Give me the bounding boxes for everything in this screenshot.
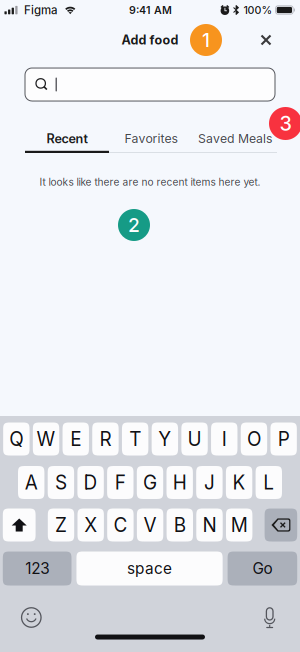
staticText: K [233, 471, 246, 494]
staticText: Add food [121, 32, 178, 48]
staticText: Recent [46, 131, 87, 146]
staticText: It looks like there are no recent items … [39, 176, 260, 188]
button[interactable]: H [166, 466, 193, 499]
staticText: Favorites [124, 131, 177, 146]
button[interactable]: E [62, 422, 89, 455]
staticText: Figma [24, 3, 58, 17]
staticText: Y [158, 427, 171, 450]
button[interactable]: Saved Meals [193, 129, 277, 153]
button[interactable]: N [196, 508, 223, 541]
button[interactable]: Z [48, 508, 74, 541]
staticText: W [36, 427, 55, 450]
button[interactable]: T [122, 422, 148, 455]
button[interactable]: S [48, 466, 74, 499]
staticText: J [204, 471, 215, 494]
staticText: I [222, 427, 227, 450]
staticText: E [70, 427, 81, 450]
button[interactable]: L [256, 466, 282, 499]
staticText: S [55, 471, 67, 494]
staticText: R [99, 427, 111, 450]
staticText: 1 [202, 28, 210, 52]
button[interactable]: A [18, 466, 44, 499]
staticText: C [113, 513, 127, 536]
button[interactable]: K [226, 466, 252, 499]
staticText: Z [55, 513, 67, 536]
staticText: T [129, 427, 141, 450]
staticText: F [115, 471, 126, 494]
staticText: 100% [244, 3, 273, 16]
button[interactable]: D [77, 466, 104, 499]
staticText: U [187, 427, 201, 450]
button[interactable] [25, 68, 275, 101]
staticText: N [202, 513, 216, 536]
staticText: G [143, 471, 157, 494]
staticText: Saved Meals [198, 131, 272, 146]
button[interactable]: C [107, 508, 134, 541]
staticText: D [84, 471, 98, 494]
button[interactable]: W [33, 422, 59, 455]
staticText: V [144, 513, 157, 536]
button[interactable]: X [77, 508, 104, 541]
button[interactable]: I [211, 422, 237, 455]
staticText: B [174, 513, 186, 536]
button[interactable]: Dictate [254, 602, 286, 632]
staticText: A [25, 471, 38, 494]
button[interactable]: Shift [3, 508, 36, 541]
button[interactable]: G [137, 466, 163, 499]
staticText: Q [9, 427, 23, 450]
button[interactable]: Close [251, 25, 281, 55]
button[interactable]: O [241, 422, 267, 455]
staticText: L [263, 471, 274, 494]
staticText: 3 [279, 111, 291, 135]
staticText: 9:41 AM [129, 3, 172, 16]
staticText: space [127, 559, 172, 578]
staticText: P [278, 427, 290, 450]
button[interactable]: Favorites [109, 129, 193, 153]
button[interactable]: Delete [265, 508, 297, 541]
button[interactable]: F [107, 466, 133, 499]
button[interactable]: U [181, 422, 208, 455]
staticText: M [231, 513, 248, 536]
button[interactable]: M [226, 508, 252, 541]
button[interactable]: R [92, 422, 119, 455]
staticText: O [247, 427, 261, 450]
button[interactable]: Q [3, 422, 29, 455]
button[interactable]: Recent [25, 129, 109, 153]
button[interactable]: P [270, 422, 297, 455]
button[interactable]: Y [152, 422, 178, 455]
staticText: 2 [128, 213, 140, 237]
button[interactable]: 123 [3, 551, 71, 585]
staticText: H [173, 471, 187, 494]
staticText: 123 [25, 559, 49, 578]
button[interactable]: J [196, 466, 223, 499]
staticText: X [84, 513, 97, 536]
button[interactable]: Go [228, 551, 297, 585]
button[interactable]: space [76, 551, 223, 585]
button[interactable]: V [137, 508, 163, 541]
staticText: Go [252, 559, 272, 578]
button[interactable]: B [167, 508, 193, 541]
button[interactable]: Emoji keyboard [15, 602, 47, 632]
